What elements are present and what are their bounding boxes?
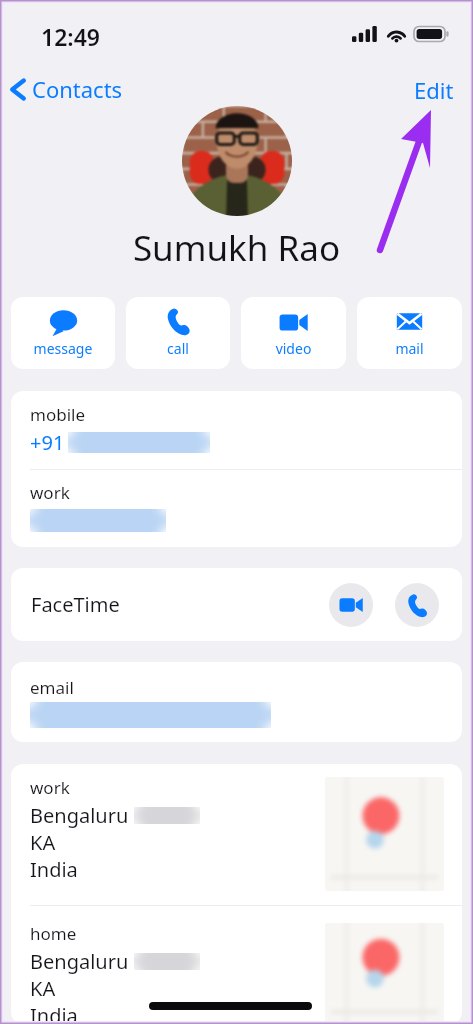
staticText: Sumukh Rao bbox=[0, 224, 473, 272]
staticText: 12:49 bbox=[41, 21, 100, 52]
button[interactable]: email bbox=[11, 662, 462, 742]
button[interactable]: Contacts bbox=[0, 70, 133, 108]
button[interactable]: mobile bbox=[11, 391, 462, 469]
button[interactable]: video bbox=[241, 297, 346, 369]
button[interactable]: Edit bbox=[397, 69, 473, 109]
staticText: FaceTime bbox=[31, 591, 120, 618]
button[interactable]: work bbox=[11, 764, 462, 905]
staticText: Bengaluru bbox=[30, 802, 129, 829]
staticText: +91 bbox=[30, 429, 65, 456]
button[interactable]: work bbox=[11, 470, 462, 532]
staticText: KA bbox=[30, 975, 56, 1002]
staticText: message bbox=[11, 339, 115, 358]
staticText: Edit bbox=[414, 75, 454, 103]
button[interactable]: FaceTime audio bbox=[395, 583, 439, 627]
staticText: video bbox=[241, 339, 346, 358]
staticText: mobile bbox=[30, 403, 85, 426]
staticText: mail bbox=[357, 339, 462, 358]
staticText: Contacts bbox=[32, 74, 123, 104]
staticText: work bbox=[30, 481, 70, 504]
staticText: KA bbox=[30, 829, 56, 856]
button[interactable]: call bbox=[126, 297, 230, 369]
staticText: work bbox=[30, 776, 70, 799]
button[interactable]: message bbox=[11, 297, 115, 369]
staticText: India bbox=[30, 1002, 78, 1024]
staticText: Bengaluru bbox=[30, 948, 129, 975]
staticText: call bbox=[126, 339, 230, 358]
button[interactable]: mail bbox=[357, 297, 462, 369]
staticText: home bbox=[30, 922, 77, 945]
button[interactable]: home bbox=[11, 906, 462, 1024]
staticText: India bbox=[30, 856, 78, 883]
button[interactable]: FaceTime video bbox=[329, 583, 373, 627]
staticText: email bbox=[30, 676, 74, 699]
